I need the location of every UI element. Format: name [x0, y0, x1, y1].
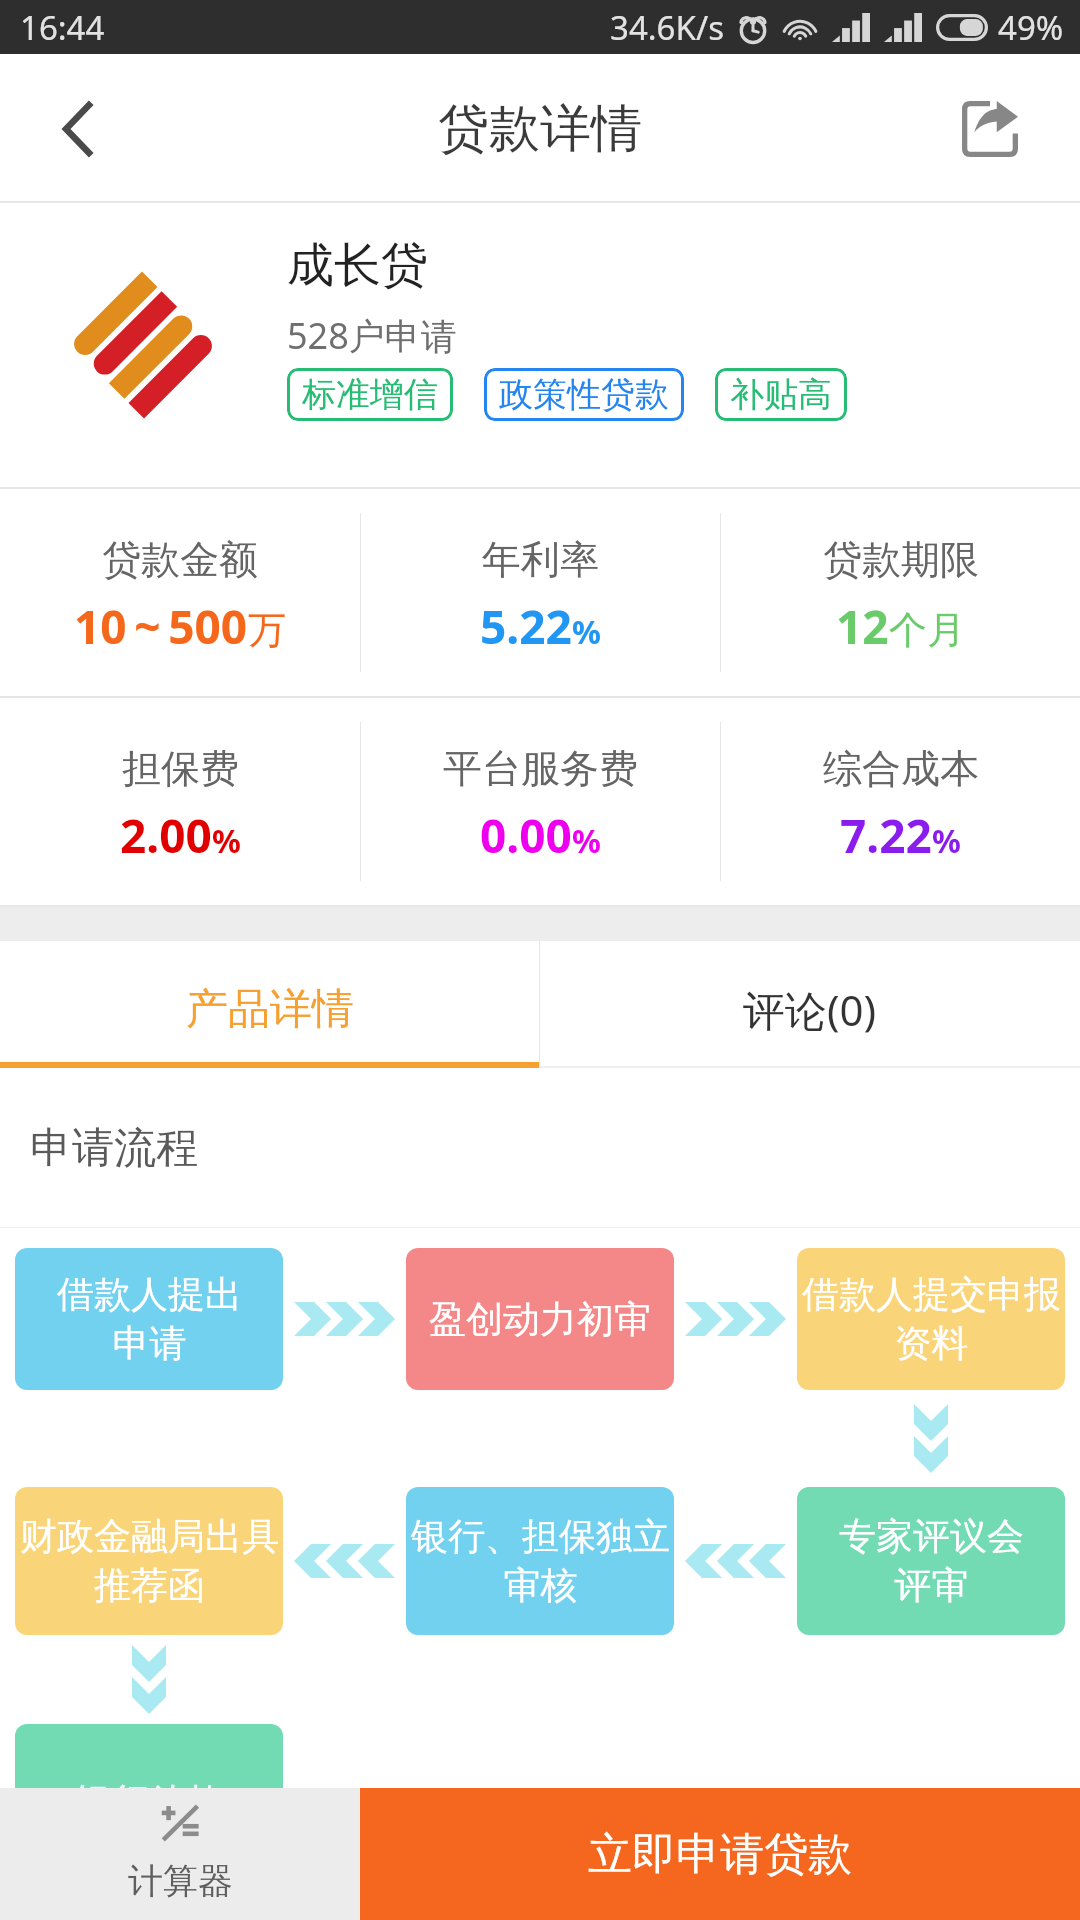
staticText: 计算器 [128, 1859, 233, 1903]
staticText: 综合成本 [823, 744, 979, 793]
staticText: 成长贷 [287, 236, 428, 295]
staticText: 标准增信 [302, 373, 438, 416]
staticText: 借款人提交申报 资料 [802, 1271, 1061, 1367]
button[interactable]: Back [0, 54, 154, 203]
staticText: 年利率 [482, 535, 599, 584]
staticText: % [572, 610, 601, 654]
staticText: 借款人提出 申请 [57, 1271, 242, 1367]
staticText: 贷款期限 [823, 535, 979, 584]
staticText: % [572, 819, 601, 863]
staticText: 平台服务费 [443, 744, 638, 793]
staticText: 银行、担保独立 审核 [411, 1513, 670, 1609]
staticText: 49% [998, 5, 1064, 50]
button[interactable]: 评论(0) [540, 941, 1080, 1068]
staticText: 个月 [889, 606, 965, 654]
staticText: 0.00 [480, 804, 572, 867]
staticText: 10 ~ 500 [74, 595, 248, 658]
button[interactable]: 立即申请贷款 [360, 1788, 1080, 1920]
staticText: 2.00 [120, 804, 212, 867]
staticText: 评论(0) [743, 981, 877, 1038]
staticText: 盈创动力初审 [429, 1296, 651, 1343]
staticText: 16:44 [20, 5, 105, 50]
staticText: 政策性贷款 [499, 373, 669, 416]
button[interactable]: Share [900, 54, 1080, 203]
staticText: % [212, 819, 241, 863]
staticText: 银行放款 [75, 1778, 223, 1788]
staticText: 产品详情 [186, 983, 354, 1036]
staticText: 万 [248, 606, 286, 654]
button[interactable]: 产品详情 [0, 941, 539, 1068]
staticText: 贷款金额 [102, 535, 258, 584]
staticText: 12 [836, 595, 889, 658]
staticText: 7.22 [840, 804, 932, 867]
button[interactable]: 计算器 [0, 1788, 360, 1920]
staticText: 担保费 [122, 744, 239, 793]
staticText: 34.6K/s [610, 5, 724, 50]
staticText: 专家评议会 评审 [839, 1513, 1024, 1609]
staticText: 补贴高 [730, 373, 832, 416]
staticText: 立即申请贷款 [588, 1827, 852, 1882]
staticText: 财政金融局出具 推荐函 [20, 1513, 279, 1609]
staticText: 贷款详情 [438, 97, 642, 161]
staticText: 528户申请 [287, 311, 457, 360]
staticText: % [932, 819, 961, 863]
staticText: 申请流程 [30, 1122, 198, 1175]
staticText: 5.22 [480, 595, 572, 658]
